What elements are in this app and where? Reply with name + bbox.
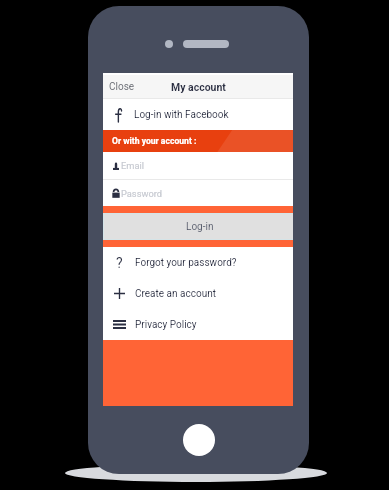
button[interactable]: Email [103,152,293,179]
button[interactable]: Create an account [103,278,293,309]
button[interactable]: Close [103,75,151,98]
staticText: Log-in [186,221,214,233]
staticText: Or with your account : [112,136,197,146]
staticText: Password [121,188,163,199]
staticText: ? [116,255,123,271]
button[interactable]: Privacy Policy [103,309,293,340]
staticText: Email [121,160,145,171]
staticText: Forgot your password? [135,257,237,269]
button[interactable]: Log-in with Facebook [103,99,293,130]
button[interactable]: ? [103,247,293,278]
button[interactable]: Password [103,180,293,206]
button[interactable]: Log-in [104,214,293,239]
staticText: Close [109,81,135,93]
button[interactable]: Home [183,424,215,456]
staticText: Create an account [135,288,216,300]
staticText: My account [171,81,226,93]
staticText: Log-in with Facebook [134,109,229,121]
staticText: Privacy Policy [135,319,197,331]
